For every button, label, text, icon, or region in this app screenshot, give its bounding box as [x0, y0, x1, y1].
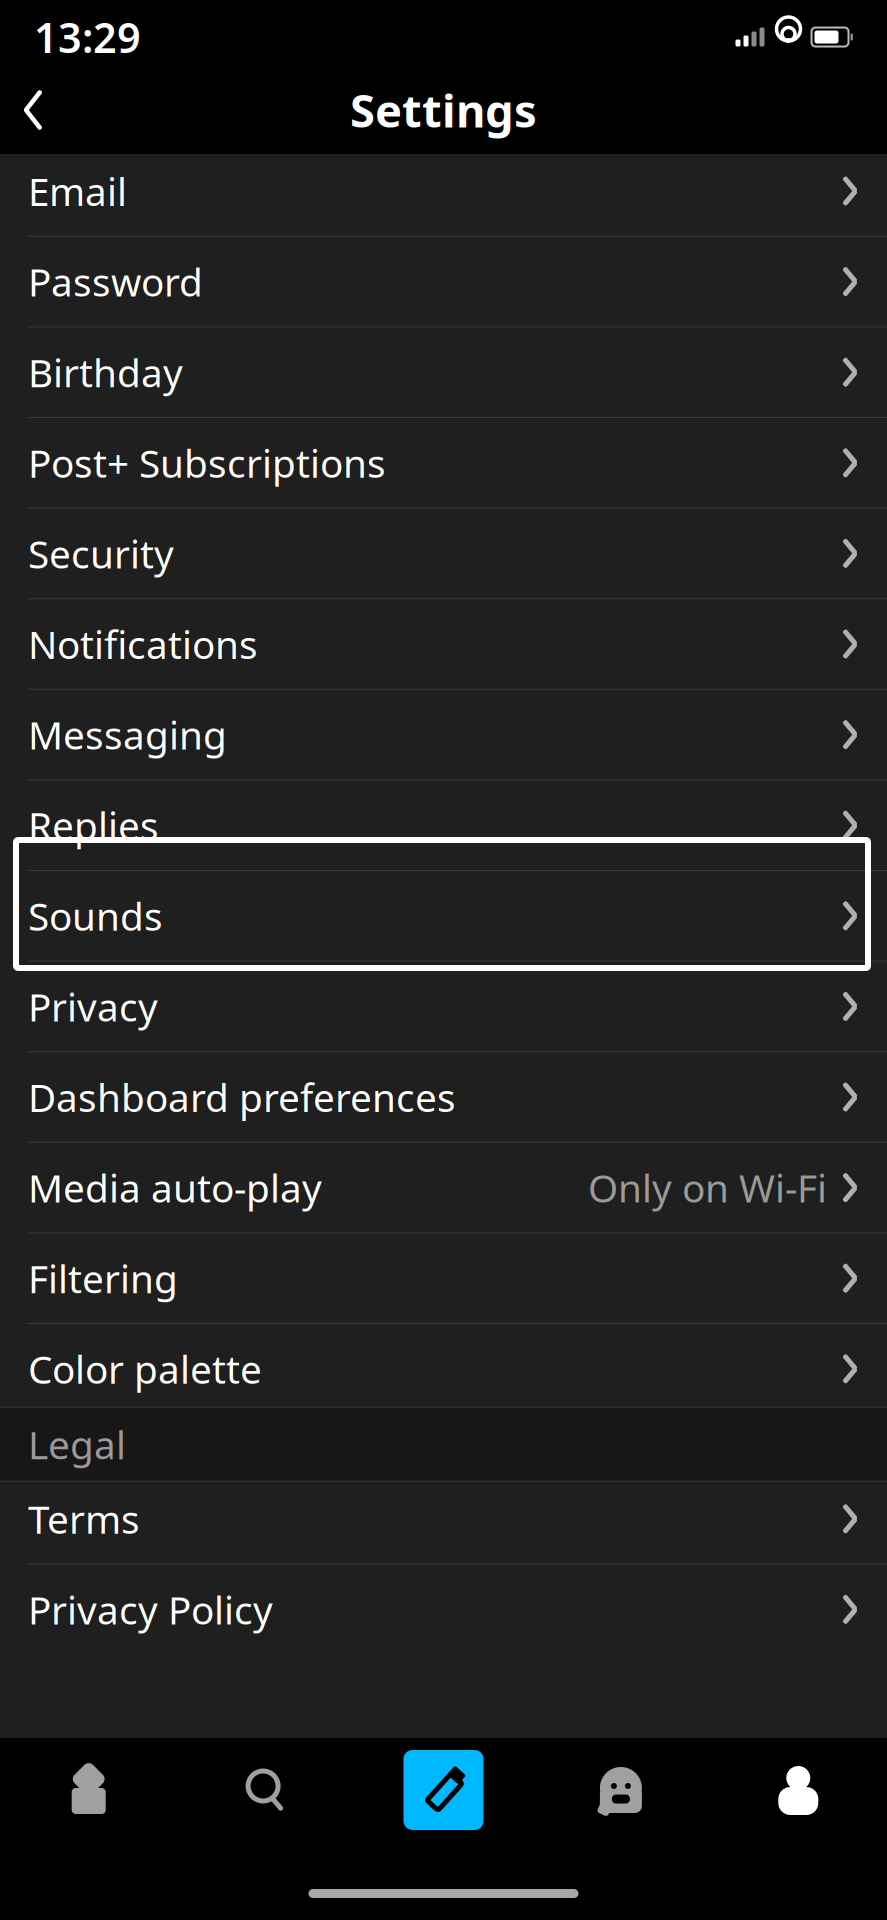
- button[interactable]: Home: [0, 1744, 177, 1836]
- button[interactable]: Email: [0, 154, 887, 245]
- button[interactable]: Dashboard preferences: [0, 1060, 887, 1151]
- staticText: Sounds: [28, 890, 163, 941]
- staticText: Terms: [28, 1493, 140, 1544]
- staticText: Media auto-play: [28, 1162, 322, 1213]
- staticText: Legal: [28, 1419, 126, 1470]
- button[interactable]: Back: [0, 75, 66, 145]
- button[interactable]: Privacy Policy: [0, 1572, 887, 1647]
- staticText: Password: [28, 256, 203, 307]
- button[interactable]: Terms: [0, 1482, 887, 1572]
- staticText: Post+ Subscriptions: [28, 437, 386, 488]
- button[interactable]: Security: [0, 516, 887, 607]
- button[interactable]: Birthday: [0, 335, 887, 426]
- staticText: Dashboard preferences: [28, 1071, 456, 1123]
- staticText: Privacy: [28, 981, 158, 1032]
- staticText: Only on Wi-Fi: [588, 1162, 827, 1213]
- button[interactable]: Password: [0, 245, 887, 335]
- staticText: Privacy Policy: [28, 1584, 273, 1635]
- staticText: 13:29: [34, 10, 141, 64]
- button[interactable]: Media auto-play: [0, 1151, 887, 1241]
- button[interactable]: Compose: [355, 1744, 532, 1836]
- staticText: Settings: [350, 80, 537, 140]
- button[interactable]: Search: [177, 1744, 355, 1836]
- staticText: Email: [28, 165, 127, 217]
- button[interactable]: Color palette: [0, 1332, 887, 1407]
- button[interactable]: Privacy: [0, 969, 887, 1060]
- staticText: Replies: [28, 799, 159, 851]
- staticText: Color palette: [28, 1343, 262, 1394]
- button[interactable]: Post+ Subscriptions: [0, 426, 887, 516]
- button[interactable]: Notifications: [0, 607, 887, 698]
- staticText: Security: [28, 528, 174, 579]
- staticText: Messaging: [28, 709, 227, 760]
- button[interactable]: Sounds: [0, 879, 887, 969]
- staticText: Birthday: [28, 346, 183, 398]
- button[interactable]: Messaging: [0, 698, 887, 788]
- staticText: Filtering: [28, 1252, 178, 1304]
- button[interactable]: Replies: [0, 788, 887, 879]
- button[interactable]: Activity: [532, 1744, 710, 1836]
- button[interactable]: Account: [710, 1744, 887, 1836]
- button[interactable]: Filtering: [0, 1241, 887, 1332]
- staticText: Notifications: [28, 618, 258, 670]
